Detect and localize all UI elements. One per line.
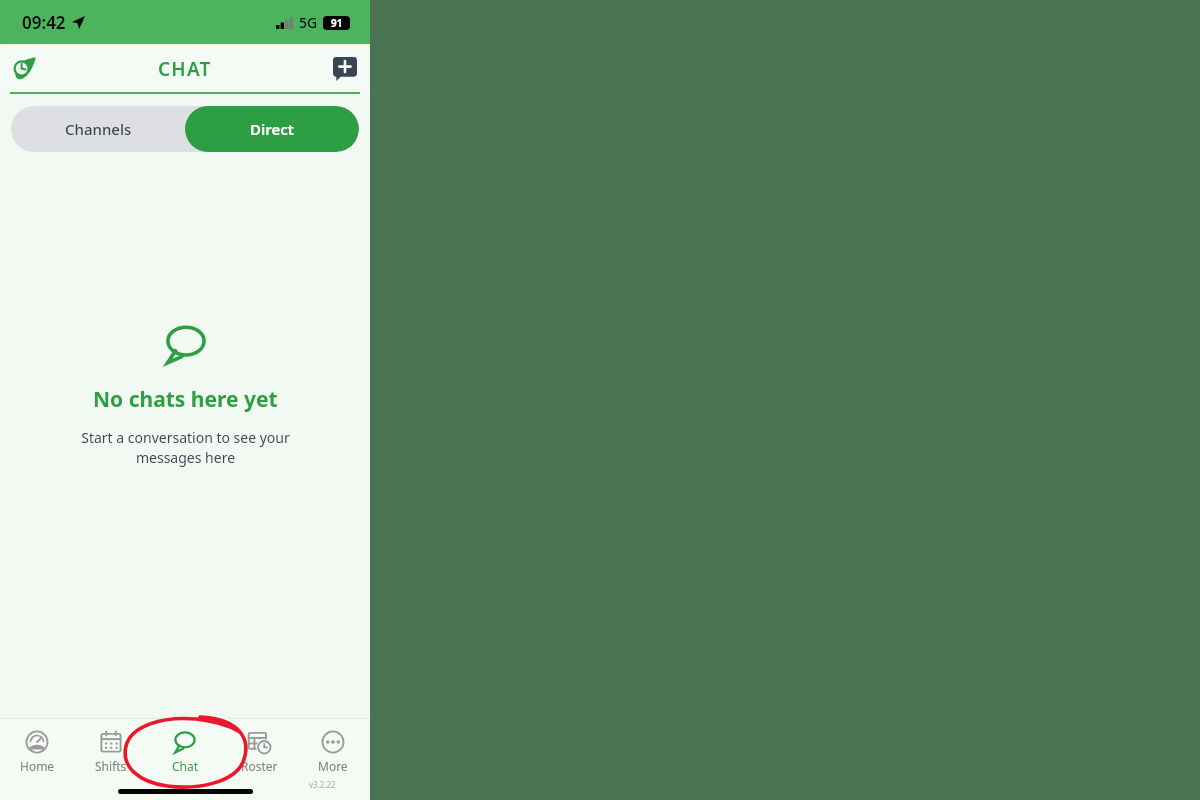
- staticText: CHAT: [158, 56, 212, 82]
- button[interactable]: More: [296, 728, 370, 776]
- button[interactable]: New chat: [332, 56, 358, 82]
- staticText: 09:42: [22, 11, 66, 34]
- button[interactable]: Direct: [185, 106, 359, 152]
- button[interactable]: Channels: [11, 106, 185, 152]
- staticText: 91: [331, 16, 343, 30]
- staticText: 5G: [299, 13, 318, 32]
- button[interactable]: Home: [0, 728, 74, 776]
- staticText: Chat: [172, 758, 199, 774]
- staticText: More: [318, 758, 348, 774]
- staticText: Roster: [241, 758, 278, 774]
- button[interactable]: App logo: [10, 54, 40, 84]
- staticText: Shifts: [95, 758, 127, 774]
- staticText: Direct: [250, 119, 294, 139]
- button[interactable]: Roster: [222, 728, 296, 776]
- staticText: No chats here yet: [93, 385, 278, 414]
- staticText: Channels: [65, 119, 132, 139]
- staticText: Start a conversation to see your message…: [81, 428, 290, 468]
- button[interactable]: Chat: [148, 728, 222, 776]
- staticText: Home: [20, 758, 55, 774]
- staticText: v3.2.22: [309, 779, 336, 790]
- button[interactable]: Shifts: [74, 728, 148, 776]
